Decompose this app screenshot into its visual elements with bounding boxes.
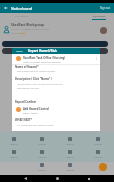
staticText: Label text	[38, 156, 46, 158]
button[interactable]: App icon	[59, 137, 81, 149]
button[interactable]: App icon	[31, 137, 53, 149]
button[interactable]: App icon	[3, 137, 25, 149]
staticText: Report Hazard/Risk	[28, 49, 57, 53]
staticText: Label text	[66, 156, 74, 158]
button[interactable]: App icon	[31, 163, 53, 175]
button[interactable]: App icon	[87, 150, 109, 162]
button[interactable]: More options	[94, 56, 98, 60]
staticText: Description ( Click "Name" )	[15, 77, 52, 81]
button[interactable]: App icon	[59, 150, 81, 162]
staticText: Report/Bring Your Light	[17, 87, 40, 90]
staticText: Label text	[10, 143, 18, 145]
staticText: Label text	[66, 143, 74, 145]
staticText: Label text	[94, 156, 102, 158]
staticText: You are	[11, 32, 19, 35]
button[interactable]: Profile	[100, 27, 107, 34]
button[interactable]: App icon	[87, 137, 109, 149]
staticText: Report / Confirm	[23, 112, 38, 115]
staticText: Label text	[10, 156, 18, 158]
button[interactable]: Back	[18, 175, 32, 182]
staticText: Label text	[66, 169, 74, 171]
button[interactable]: Sign out	[100, 6, 111, 10]
button[interactable]: Add	[99, 163, 107, 171]
staticText: SETTINGS	[93, 14, 106, 17]
staticText: Add Hazard Control	[23, 107, 50, 111]
staticText: Locate : St Andrews Community Residence	[23, 61, 61, 64]
staticText: Enter hazard name eg : Spilling of liqui…	[17, 70, 56, 73]
button[interactable]: App icon	[59, 163, 81, 175]
staticText: Name of Hazard *	[15, 65, 39, 69]
staticText: Home	[16, 50, 23, 53]
button[interactable]: App icon	[3, 150, 25, 162]
button[interactable]: Back	[1, 3, 10, 12]
staticText: Noticeboard	[15, 15, 29, 18]
staticText: Noticeboard	[11, 6, 33, 11]
staticText: SkedFast Task Office (Nursing)	[23, 56, 66, 60]
staticText: Label text	[94, 143, 102, 145]
staticText: Onsite	[19, 32, 26, 35]
staticText: WHAT NEXT*	[15, 118, 33, 122]
staticText: Sign out	[100, 6, 111, 10]
staticText: e.g. should note after existing a hazard	[17, 124, 54, 127]
button[interactable]: Home	[50, 175, 64, 182]
staticText: Report/Confirm	[15, 100, 37, 104]
button[interactable]: Report Hazard/Risk	[28, 49, 57, 53]
staticText: Add the details of any or signs of the h…	[17, 83, 63, 86]
staticText: SkedFast Workgroup	[11, 23, 44, 27]
button[interactable]: Home	[16, 50, 23, 53]
button[interactable]: App icon	[31, 150, 53, 162]
staticText: Location : St Andrews Community Centre	[11, 28, 50, 31]
staticText: Label text	[38, 169, 46, 171]
button[interactable]: SETTINGS	[92, 14, 106, 20]
button[interactable]: Recent apps	[82, 175, 96, 182]
staticText: Label text	[38, 143, 46, 145]
